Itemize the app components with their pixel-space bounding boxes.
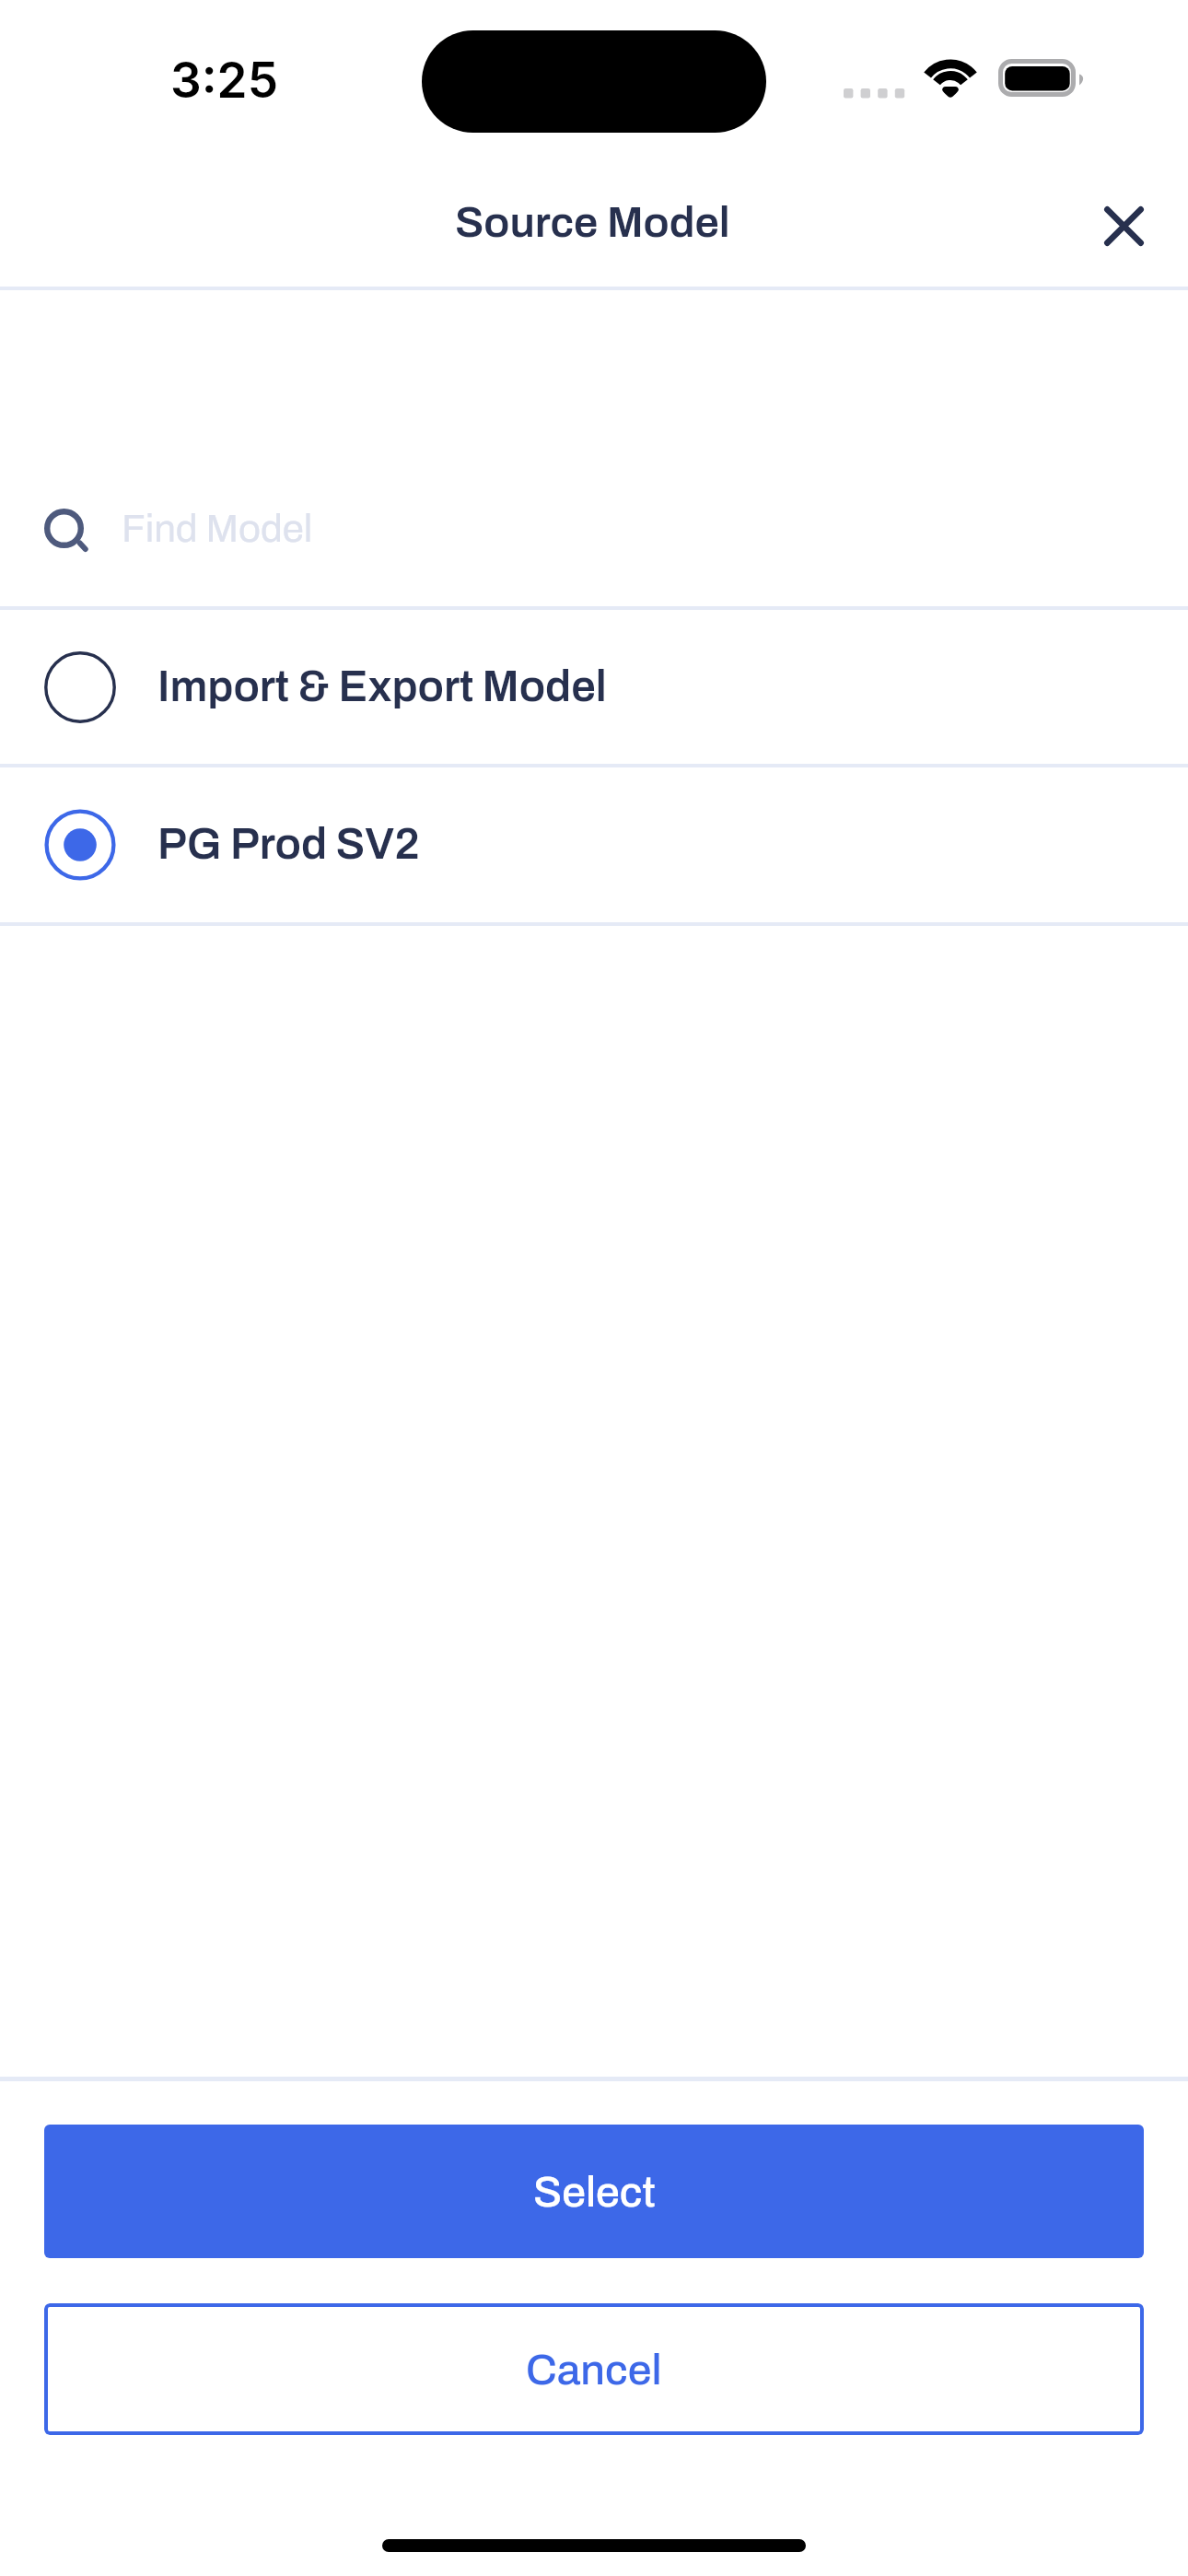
staticText: PG Prod SV2 — [157, 820, 420, 868]
staticText: Cancel — [526, 2347, 662, 2394]
button[interactable]: Find Model — [0, 290, 1188, 606]
button[interactable]: Close — [1082, 184, 1165, 267]
staticText: Find Model — [122, 508, 313, 550]
button[interactable]: Cancel — [44, 2303, 1144, 2435]
staticText: Select — [533, 2169, 656, 2216]
button[interactable]: Select — [44, 2125, 1144, 2258]
staticText: Import & Export Model — [157, 662, 607, 710]
button[interactable]: Import & Export Model — [0, 610, 1188, 764]
button[interactable]: PG Prod SV2 — [0, 767, 1188, 922]
staticText: 3:25 — [170, 51, 278, 110]
staticText: Source Model — [455, 199, 730, 246]
